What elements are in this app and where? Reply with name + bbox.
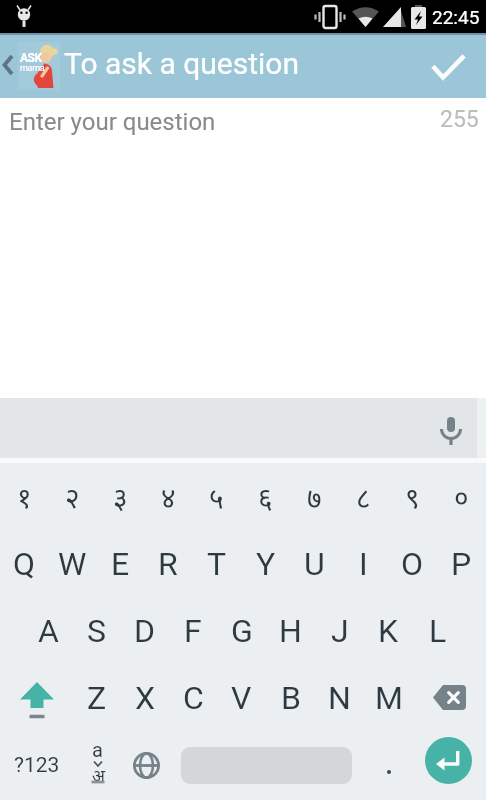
button[interactable]: N bbox=[315, 664, 364, 731]
button[interactable]: F bbox=[168, 597, 217, 664]
staticText: १ bbox=[17, 478, 32, 516]
staticText: K bbox=[378, 612, 399, 650]
button[interactable]: K bbox=[364, 597, 413, 664]
staticText: N bbox=[328, 679, 351, 717]
button[interactable]: I bbox=[339, 530, 388, 597]
staticText: Y bbox=[256, 545, 276, 583]
button[interactable]: ?123 bbox=[0, 731, 73, 800]
button[interactable]: C bbox=[169, 664, 217, 731]
staticText: Z bbox=[87, 679, 107, 717]
staticText: mama bbox=[20, 63, 45, 74]
button[interactable]: U bbox=[290, 530, 339, 597]
staticText: I bbox=[359, 545, 368, 583]
button[interactable]: a bbox=[73, 731, 122, 800]
button[interactable]: ७ bbox=[290, 463, 339, 530]
button[interactable]: J bbox=[315, 597, 364, 664]
staticText: T bbox=[207, 545, 227, 583]
button[interactable] bbox=[371, 731, 411, 800]
staticText: To ask a question bbox=[64, 46, 299, 81]
staticText: ० bbox=[454, 478, 469, 516]
staticText: E bbox=[111, 545, 130, 583]
staticText: H bbox=[279, 612, 302, 650]
staticText: ७ bbox=[307, 478, 322, 516]
staticText: ASK bbox=[20, 51, 42, 65]
button[interactable]: ८ bbox=[339, 463, 388, 530]
button[interactable]: ३ bbox=[96, 463, 144, 530]
button[interactable]: ६ bbox=[241, 463, 290, 530]
staticText: S bbox=[87, 612, 106, 650]
button[interactable] bbox=[413, 664, 486, 731]
button[interactable]: E bbox=[96, 530, 144, 597]
button[interactable]: ५ bbox=[192, 463, 241, 530]
button[interactable]: Z bbox=[73, 664, 121, 731]
staticText: P bbox=[451, 545, 472, 583]
button[interactable]: V bbox=[217, 664, 266, 731]
button[interactable] bbox=[410, 731, 486, 800]
button[interactable]: ० bbox=[437, 463, 486, 530]
staticText: Q bbox=[13, 545, 36, 583]
button[interactable]: W bbox=[48, 530, 96, 597]
staticText: O bbox=[401, 545, 424, 583]
staticText: a bbox=[92, 738, 103, 761]
button[interactable]: १ bbox=[0, 463, 48, 530]
staticText: F bbox=[184, 612, 202, 650]
button[interactable] bbox=[408, 33, 486, 98]
staticText: ८ bbox=[356, 478, 371, 516]
staticText: D bbox=[134, 612, 155, 650]
staticText: R bbox=[158, 545, 178, 583]
button[interactable]: ४ bbox=[144, 463, 192, 530]
staticText: U bbox=[304, 545, 325, 583]
button[interactable]: H bbox=[266, 597, 315, 664]
staticText: ६ bbox=[258, 478, 273, 516]
button[interactable]: Y bbox=[241, 530, 290, 597]
staticText: ४ bbox=[161, 478, 176, 516]
button[interactable] bbox=[0, 664, 73, 731]
staticText: W bbox=[58, 545, 87, 583]
staticText: G bbox=[231, 612, 253, 650]
button[interactable]: २ bbox=[48, 463, 96, 530]
staticText: L bbox=[429, 612, 447, 650]
button[interactable]: Q bbox=[0, 530, 48, 597]
button[interactable]: S bbox=[72, 597, 120, 664]
staticText: V bbox=[231, 679, 252, 717]
button[interactable] bbox=[431, 411, 471, 451]
staticText: A bbox=[38, 612, 59, 650]
button[interactable]: P bbox=[437, 530, 486, 597]
button[interactable]: L bbox=[413, 597, 462, 664]
button[interactable]: ASK bbox=[0, 33, 62, 98]
staticText: ५ bbox=[209, 478, 224, 516]
button[interactable]: T bbox=[192, 530, 241, 597]
staticText: X bbox=[135, 679, 156, 717]
staticText: M bbox=[375, 679, 403, 717]
button[interactable]: O bbox=[388, 530, 437, 597]
staticText: ३ bbox=[113, 478, 128, 516]
staticText: J bbox=[331, 612, 349, 650]
button[interactable]: R bbox=[144, 530, 192, 597]
staticText: अ bbox=[92, 764, 105, 787]
button[interactable]: G bbox=[217, 597, 266, 664]
button[interactable]: A bbox=[24, 597, 72, 664]
staticText: Enter your question bbox=[9, 108, 216, 136]
staticText: B bbox=[281, 679, 301, 717]
button[interactable]: B bbox=[266, 664, 315, 731]
staticText: C bbox=[183, 679, 204, 717]
button[interactable]: X bbox=[121, 664, 169, 731]
button[interactable]: M bbox=[364, 664, 413, 731]
staticText: ९ bbox=[405, 478, 420, 516]
staticText: 22:45 bbox=[432, 6, 480, 28]
button[interactable]: D bbox=[120, 597, 168, 664]
staticText: २ bbox=[65, 478, 80, 516]
button[interactable]: ९ bbox=[388, 463, 437, 530]
staticText: 255 bbox=[440, 106, 479, 133]
button[interactable] bbox=[122, 731, 171, 800]
staticText: ?123 bbox=[14, 753, 60, 778]
